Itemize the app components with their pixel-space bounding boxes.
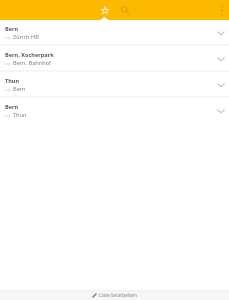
button[interactable]: Thun (0, 72, 229, 98)
staticText: Thun (5, 77, 20, 85)
staticText: Bern (13, 85, 26, 93)
button[interactable]: Expand (214, 104, 228, 118)
button[interactable]: Liste bearbeiten (0, 291, 229, 300)
button[interactable]: Bern (0, 98, 229, 122)
staticText: Zürich HB (13, 33, 39, 41)
staticText: Liste bearbeiten (99, 292, 137, 299)
staticText: Bern, Kocherpark (5, 51, 54, 59)
button[interactable]: More options (215, 0, 229, 20)
staticText: Bern (5, 25, 19, 33)
button[interactable]: Favourites (95, 0, 115, 20)
button[interactable]: Bern, Kocherpark (0, 46, 229, 72)
button[interactable]: Expand (214, 78, 228, 92)
button[interactable]: Bern (0, 20, 229, 46)
staticText: Bern (5, 103, 19, 111)
staticText: Thun (13, 111, 27, 119)
button[interactable]: Expand (214, 26, 228, 40)
button[interactable]: Search (115, 0, 135, 20)
button[interactable]: Expand (214, 52, 228, 66)
staticText: Bern, Bahnhof (13, 59, 51, 67)
